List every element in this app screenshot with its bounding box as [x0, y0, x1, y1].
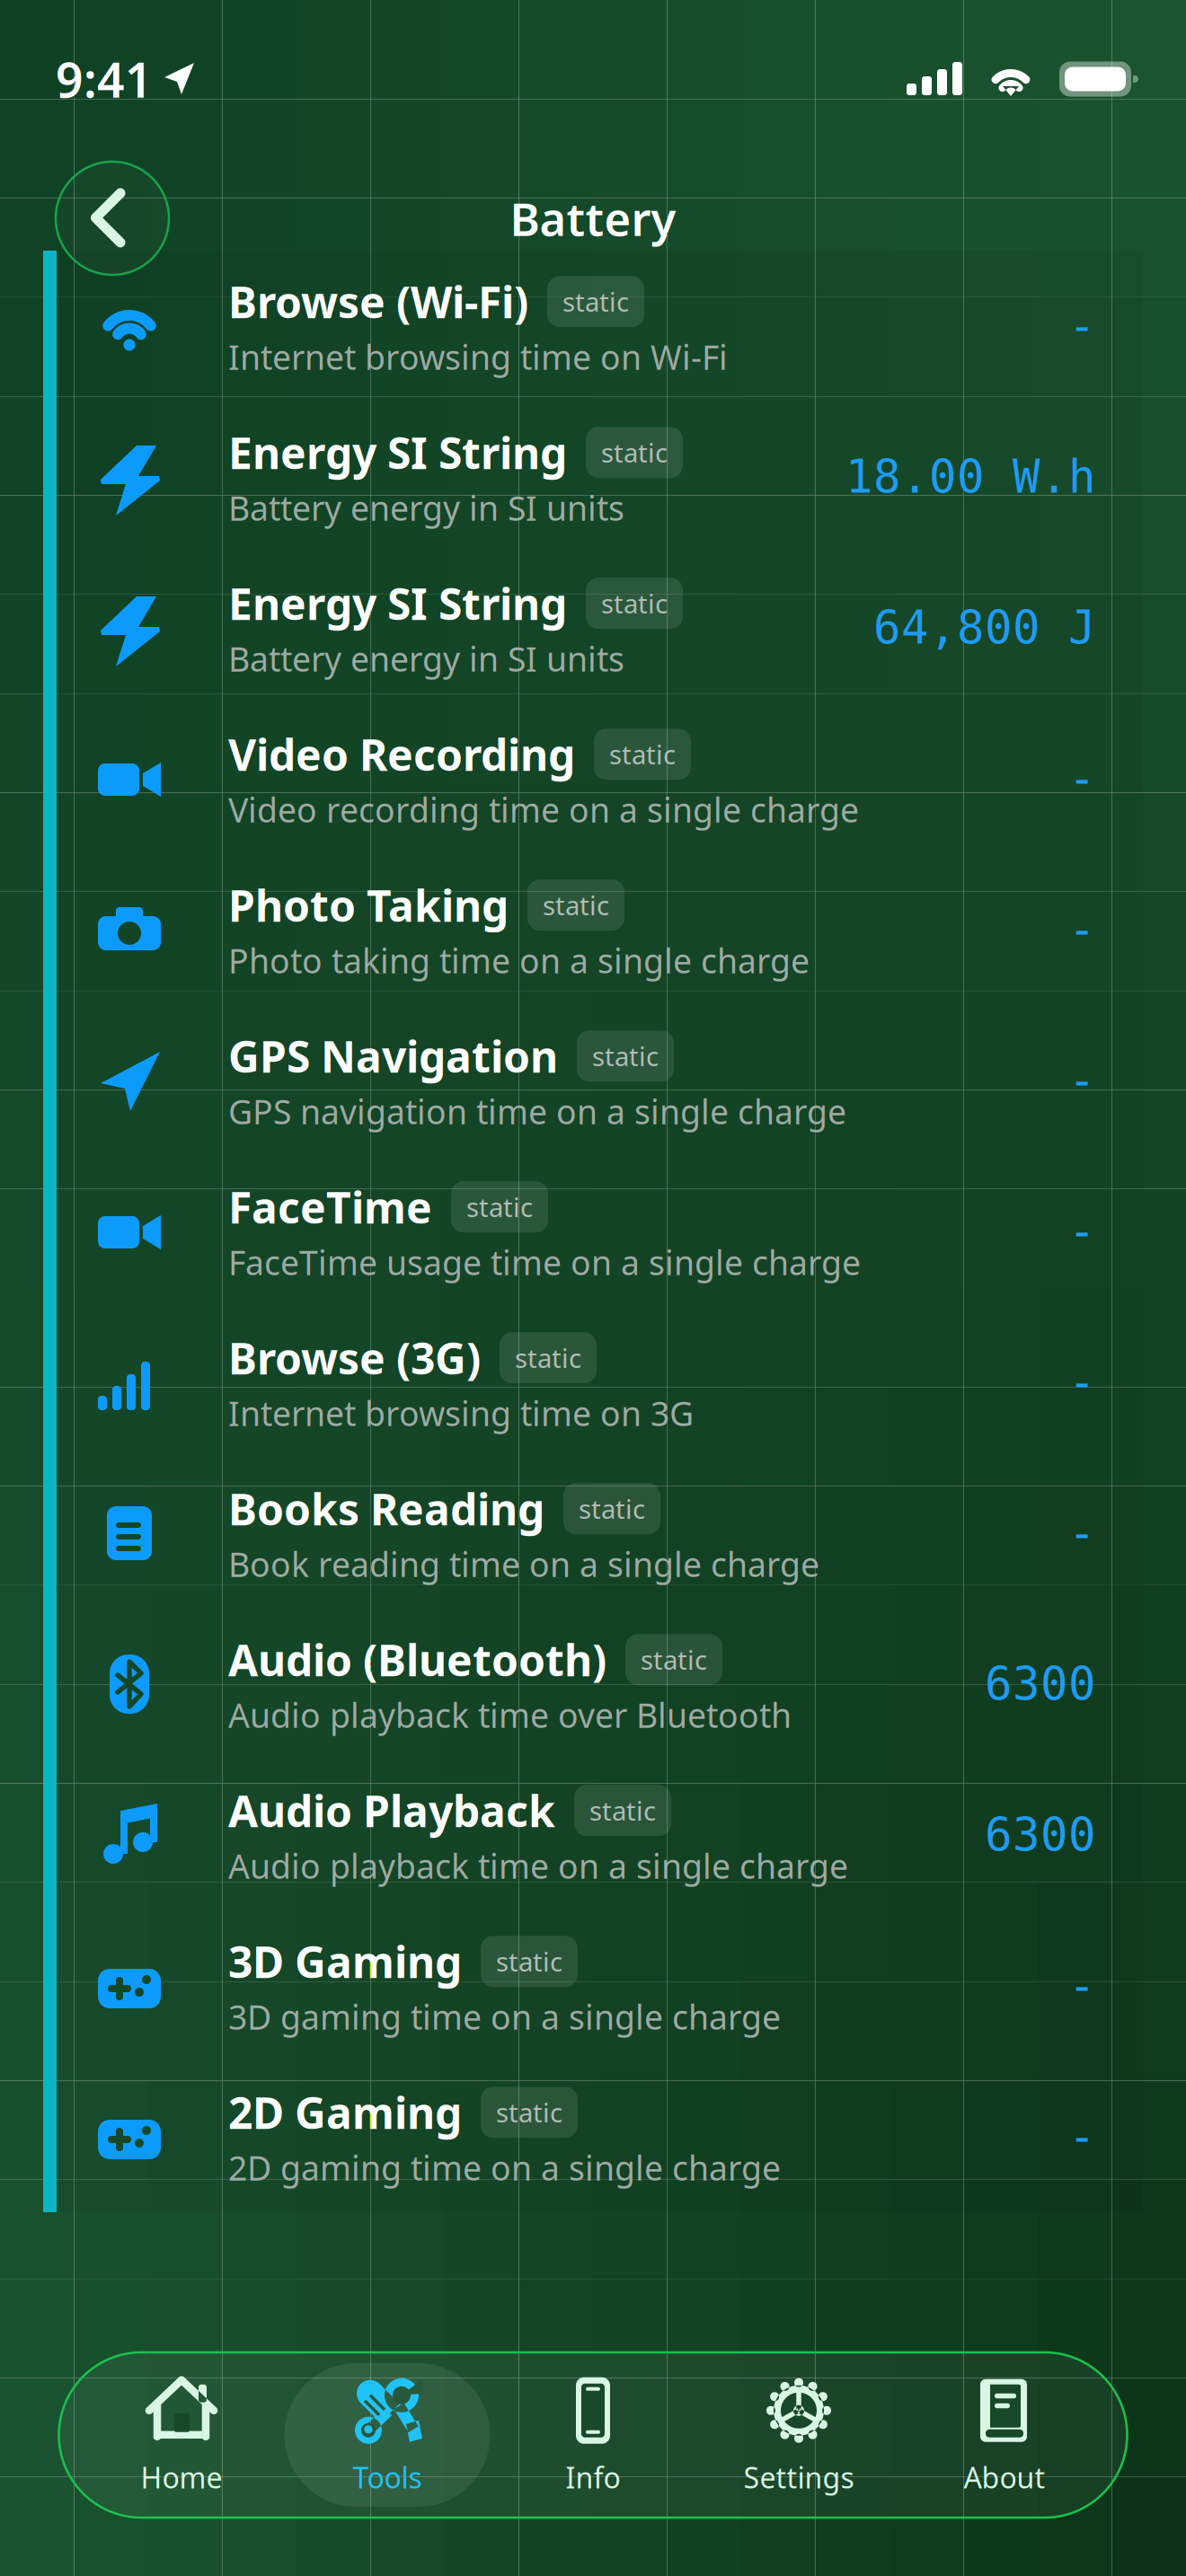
staticText: static: [515, 1340, 581, 1375]
staticText: -: [1068, 1206, 1096, 1257]
button[interactable]: Energy SI String: [43, 552, 1143, 703]
staticText: -: [1068, 300, 1096, 352]
staticText: Book reading time on a single charge: [228, 1542, 819, 1586]
staticText: static: [579, 1491, 645, 1526]
staticText: Audio playback time over Bluetooth: [228, 1693, 792, 1737]
staticText: Video Recording: [228, 726, 575, 783]
button[interactable]: Info: [490, 2363, 696, 2507]
button[interactable]: Back: [56, 162, 169, 275]
staticText: Audio playback time on a single charge: [228, 1844, 848, 1888]
staticText: Internet browsing time on 3G: [228, 1391, 694, 1435]
staticText: -: [1068, 753, 1096, 805]
staticText: Home: [141, 2458, 222, 2496]
staticText: static: [601, 435, 668, 470]
button[interactable]: Browse (3G): [43, 1307, 1143, 1458]
staticText: Energy SI String: [228, 575, 567, 632]
staticText: -: [1068, 1356, 1096, 1408]
staticText: static: [592, 1038, 659, 1074]
staticText: Audio Playback: [228, 1782, 555, 1839]
staticText: Battery energy in SI units: [228, 486, 624, 530]
staticText: -: [1068, 1507, 1096, 1559]
staticText: 18.00 W.h: [845, 451, 1096, 503]
staticText: Settings: [743, 2458, 854, 2496]
button[interactable]: GPS Navigation: [43, 1005, 1143, 1156]
button[interactable]: 2D Gaming: [43, 2061, 1143, 2212]
staticText: static: [562, 284, 629, 319]
staticText: 64,800 J: [873, 602, 1096, 654]
button[interactable]: Home: [79, 2363, 284, 2507]
staticText: GPS Navigation: [228, 1027, 558, 1085]
staticText: static: [466, 1189, 533, 1224]
button[interactable]: Video Recording: [43, 703, 1143, 854]
staticText: FaceTime usage time on a single charge: [228, 1240, 861, 1285]
staticText: Browse (3G): [228, 1329, 481, 1386]
staticText: Energy SI String: [228, 424, 567, 481]
staticText: FaceTime: [228, 1178, 432, 1235]
staticText: -: [1068, 904, 1096, 955]
button[interactable]: Photo Taking: [43, 854, 1143, 1005]
staticText: static: [496, 1944, 562, 1979]
staticText: Tools: [353, 2458, 422, 2496]
staticText: 3D Gaming: [228, 1933, 462, 1990]
staticText: static: [589, 1793, 656, 1828]
staticText: Battery energy in SI units: [228, 636, 624, 681]
staticText: -: [1068, 2111, 1096, 2163]
staticText: GPS navigation time on a single charge: [228, 1089, 846, 1134]
button[interactable]: Books Reading: [43, 1458, 1143, 1609]
staticText: static: [496, 2095, 562, 2130]
staticText: Photo taking time on a single charge: [228, 938, 810, 983]
staticText: Photo Taking: [228, 876, 509, 934]
button[interactable]: Audio Playback: [43, 1760, 1143, 1910]
staticText: 9:41: [56, 47, 153, 111]
staticText: static: [609, 737, 676, 772]
staticText: Battery: [510, 188, 676, 249]
button[interactable]: Audio (Bluetooth): [43, 1609, 1143, 1760]
button[interactable]: About: [902, 2363, 1107, 2507]
staticText: 6300: [985, 1809, 1096, 1861]
staticText: 2D Gaming: [228, 2084, 462, 2141]
button[interactable]: Settings: [696, 2363, 902, 2507]
staticText: -: [1068, 1960, 1096, 2012]
staticText: static: [543, 888, 609, 923]
staticText: Audio (Bluetooth): [228, 1631, 606, 1688]
staticText: 3D gaming time on a single charge: [228, 1995, 781, 2039]
staticText: -: [1068, 1055, 1096, 1106]
staticText: Video recording time on a single charge: [228, 787, 859, 832]
button[interactable]: Browse (Wi-Fi): [43, 251, 1143, 401]
button[interactable]: FaceTime: [43, 1156, 1143, 1307]
staticText: static: [601, 586, 668, 621]
button[interactable]: Tools: [284, 2363, 490, 2507]
staticText: Internet browsing time on Wi-Fi: [228, 335, 728, 379]
staticText: 6300: [985, 1658, 1096, 1710]
staticText: 2D gaming time on a single charge: [228, 2145, 781, 2190]
staticText: Browse (Wi-Fi): [228, 273, 528, 330]
staticText: Info: [566, 2458, 620, 2496]
button[interactable]: 3D Gaming: [43, 1910, 1143, 2061]
staticText: About: [964, 2458, 1045, 2496]
staticText: Books Reading: [228, 1480, 544, 1537]
staticText: static: [641, 1642, 707, 1677]
button[interactable]: Energy SI String: [43, 401, 1143, 552]
